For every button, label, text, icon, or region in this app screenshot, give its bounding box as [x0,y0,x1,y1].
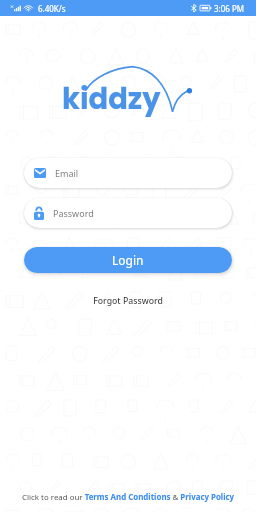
button[interactable]: Login [24,247,232,273]
staticText: 3:06 PM [214,3,245,14]
button[interactable]: Password [24,198,232,228]
button[interactable]: Forgot Password [0,295,256,307]
button[interactable]: Email [24,158,232,188]
staticText: 6.40K/s [38,3,66,14]
staticText: Password [53,207,94,219]
staticText: Email [55,167,79,179]
button[interactable]: Click to read our Terms And Conditions &… [22,492,235,503]
staticText: Login [112,252,144,268]
staticText: kiddzy [62,79,161,120]
